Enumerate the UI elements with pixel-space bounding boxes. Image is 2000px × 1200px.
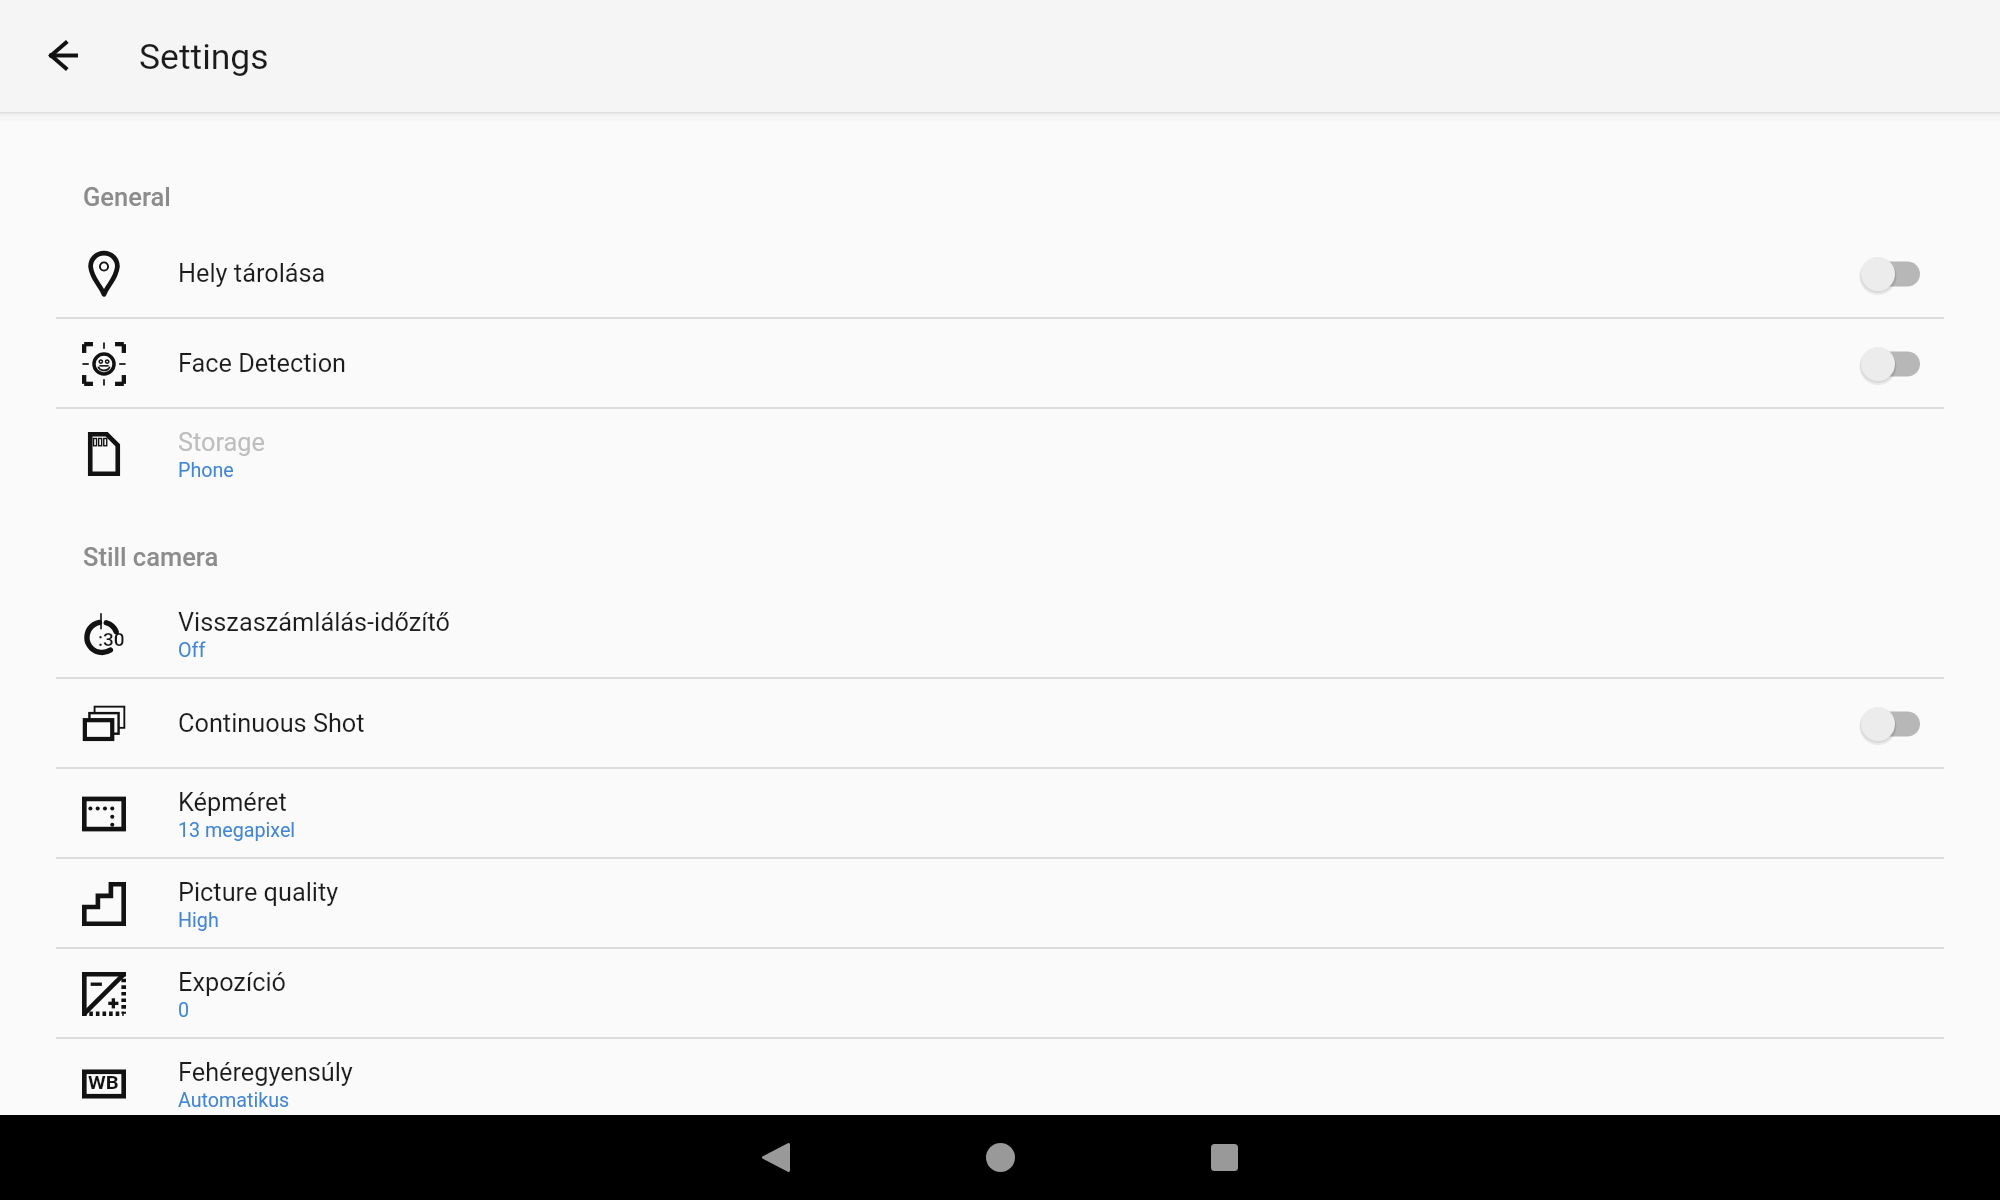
button[interactable]: Toggle Face Detection <box>1842 319 1938 409</box>
staticText: Automatikus <box>178 1089 290 1112</box>
button[interactable]: Navigate up <box>15 7 112 104</box>
staticText: Fehéregyensúly <box>178 1058 353 1088</box>
button[interactable]: Recent apps <box>1176 1115 1272 1200</box>
button[interactable]: Hely tárolása <box>0 229 2000 319</box>
button[interactable]: Face Detection <box>0 319 2000 409</box>
staticText: Settings <box>139 36 269 78</box>
button[interactable]: Képméret <box>0 769 2000 859</box>
staticText: Still camera <box>83 542 219 572</box>
staticText: WB <box>88 1073 119 1094</box>
staticText: Phone <box>178 459 234 482</box>
staticText: Hely tárolása <box>178 259 326 289</box>
staticText: Picture quality <box>178 878 339 908</box>
staticText: Face Detection <box>178 349 347 379</box>
staticText: Visszaszámlálás-időzítő <box>178 608 451 638</box>
staticText: General <box>83 182 171 212</box>
staticText: Expozíció <box>178 968 286 998</box>
button[interactable]: Toggle Hely tárolása <box>1842 229 1938 319</box>
button[interactable]: Expozíció <box>0 949 2000 1039</box>
staticText: Off <box>178 639 206 662</box>
staticText: 13 megapixel <box>178 819 296 842</box>
staticText: Képméret <box>178 788 287 818</box>
button[interactable]: Picture quality <box>0 859 2000 949</box>
button[interactable]: Toggle Continuous Shot <box>1842 679 1938 769</box>
button[interactable]: Continuous Shot <box>0 679 2000 769</box>
button[interactable]: Home <box>952 1115 1048 1200</box>
button[interactable]: :30 <box>0 589 2000 679</box>
staticText: 0 <box>178 999 190 1022</box>
staticText: Storage <box>178 428 265 458</box>
button[interactable]: WB <box>0 1039 2000 1129</box>
staticText: Continuous Shot <box>178 709 365 739</box>
button[interactable]: Storage <box>0 409 2000 499</box>
staticText: High <box>178 909 219 932</box>
button[interactable]: Back <box>728 1115 824 1200</box>
staticText: :30 <box>98 628 125 650</box>
